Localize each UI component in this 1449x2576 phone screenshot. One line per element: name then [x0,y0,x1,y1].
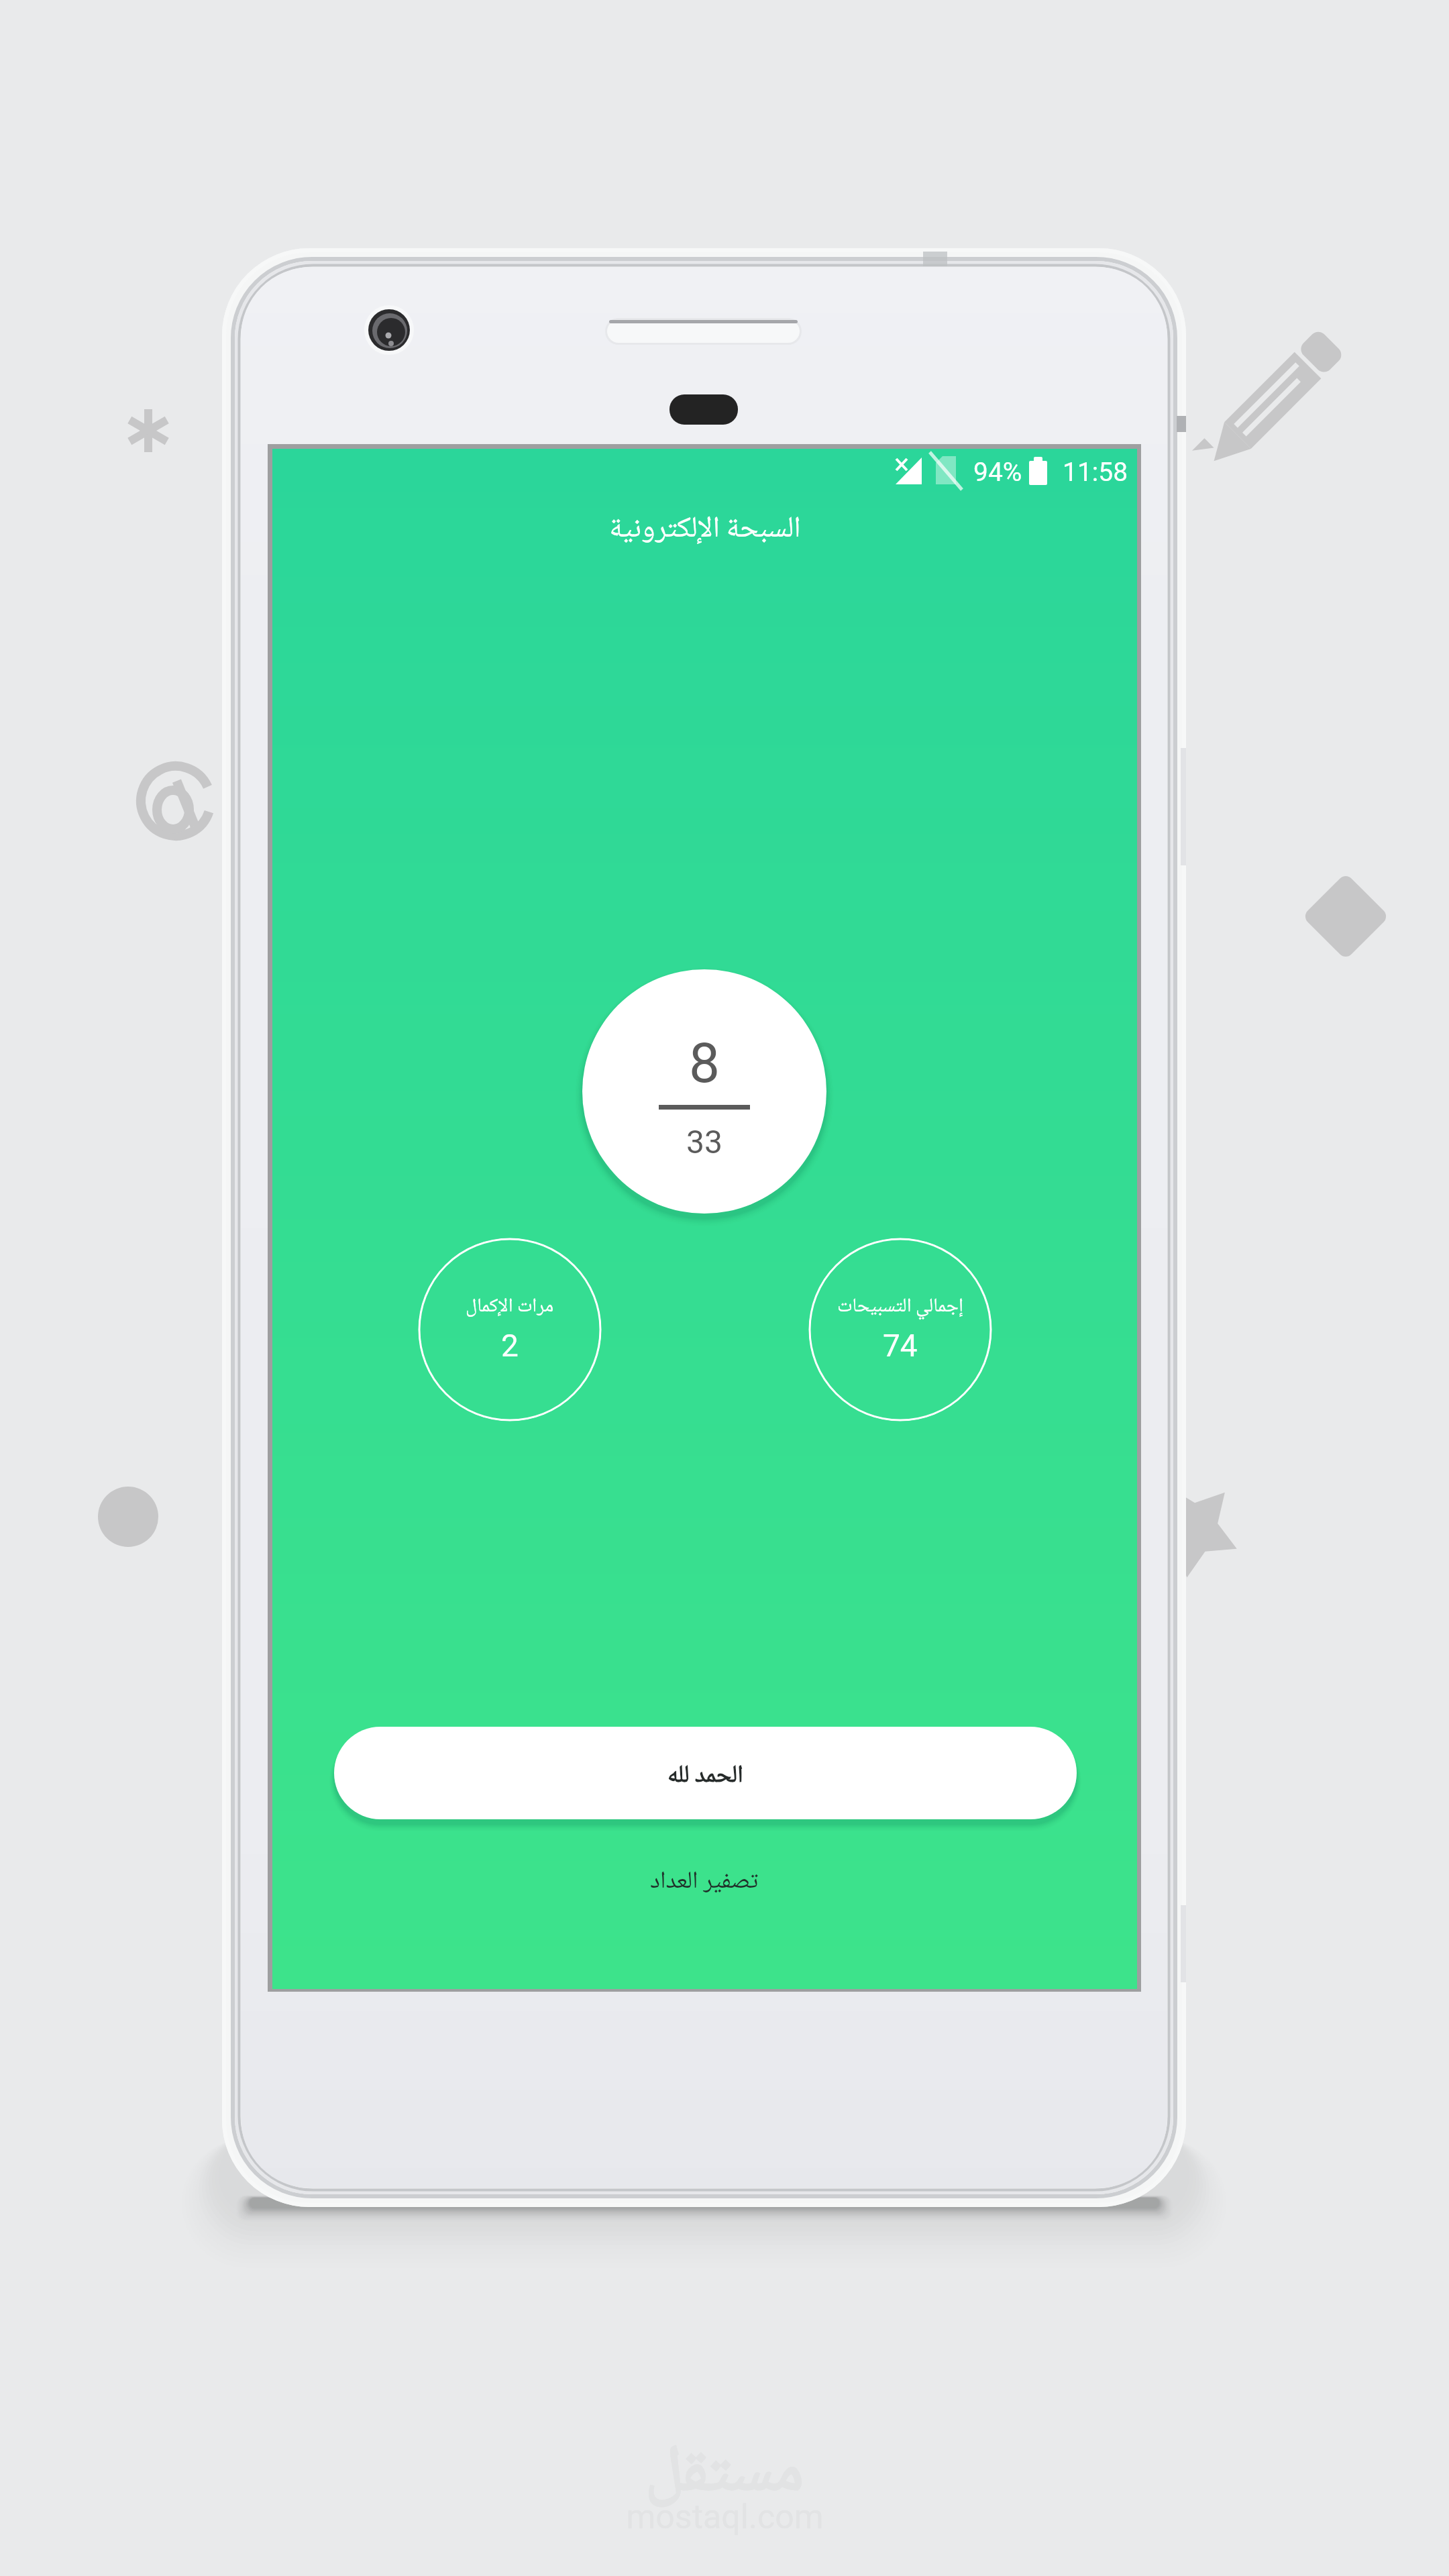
button[interactable]: عداد التسبيح - 8 من 33 [582,969,826,1214]
staticText: 2 [501,1328,519,1364]
button[interactable]: مرات الإكمال [418,1238,602,1421]
staticText: 74 [883,1328,918,1364]
button[interactable]: إجمالي التسبيحات [808,1238,992,1421]
button[interactable]: تصفير العداد [557,1858,852,1907]
staticText: إجمالي التسبيحات [837,1291,963,1324]
staticText: الحمد لله [667,1756,743,1797]
staticText: 94% [973,457,1022,488]
staticText: 33 [686,1123,722,1161]
button[interactable]: الحمد لله [334,1727,1077,1819]
staticText: السبحة الإلكترونية [609,505,801,555]
staticText: مرات الإكمال [466,1291,554,1324]
staticText: 11:58 [1063,457,1128,488]
staticText: 8 [689,1031,720,1095]
staticText: تصفير العداد [650,1862,759,1903]
